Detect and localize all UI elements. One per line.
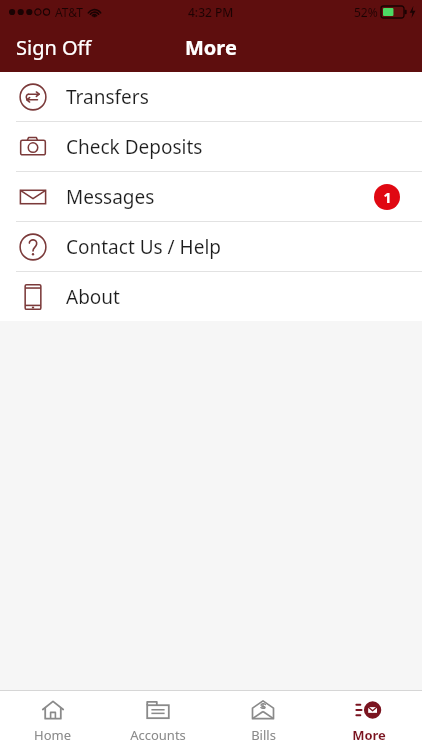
staticText: More (352, 726, 386, 744)
button[interactable]: Check Deposits (0, 122, 422, 171)
staticText: Home (34, 726, 71, 744)
button[interactable]: More (316, 691, 422, 750)
staticText: 52% (354, 4, 378, 20)
button[interactable]: Accounts (105, 691, 210, 750)
staticText: AT&T (55, 4, 83, 20)
staticText: More (185, 34, 237, 61)
staticText: Contact Us / Help (66, 234, 222, 260)
staticText: Sign Off (16, 34, 92, 61)
button[interactable]: Home (0, 691, 105, 750)
staticText: Check Deposits (66, 134, 203, 160)
button[interactable]: Transfers (0, 72, 422, 121)
staticText: 4:32 PM (188, 4, 234, 20)
button[interactable]: Contact Us / Help (0, 222, 422, 271)
staticText: About (66, 284, 120, 310)
staticText: Messages (66, 184, 155, 210)
button[interactable]: Messages (0, 172, 422, 221)
button[interactable]: Sign Off (0, 23, 108, 72)
staticText: 1 (383, 188, 392, 207)
button[interactable]: About (0, 272, 422, 321)
staticText: Transfers (66, 84, 149, 110)
staticText: Accounts (130, 726, 186, 744)
staticText: Bills (251, 726, 276, 744)
button[interactable]: Bills (210, 691, 316, 750)
